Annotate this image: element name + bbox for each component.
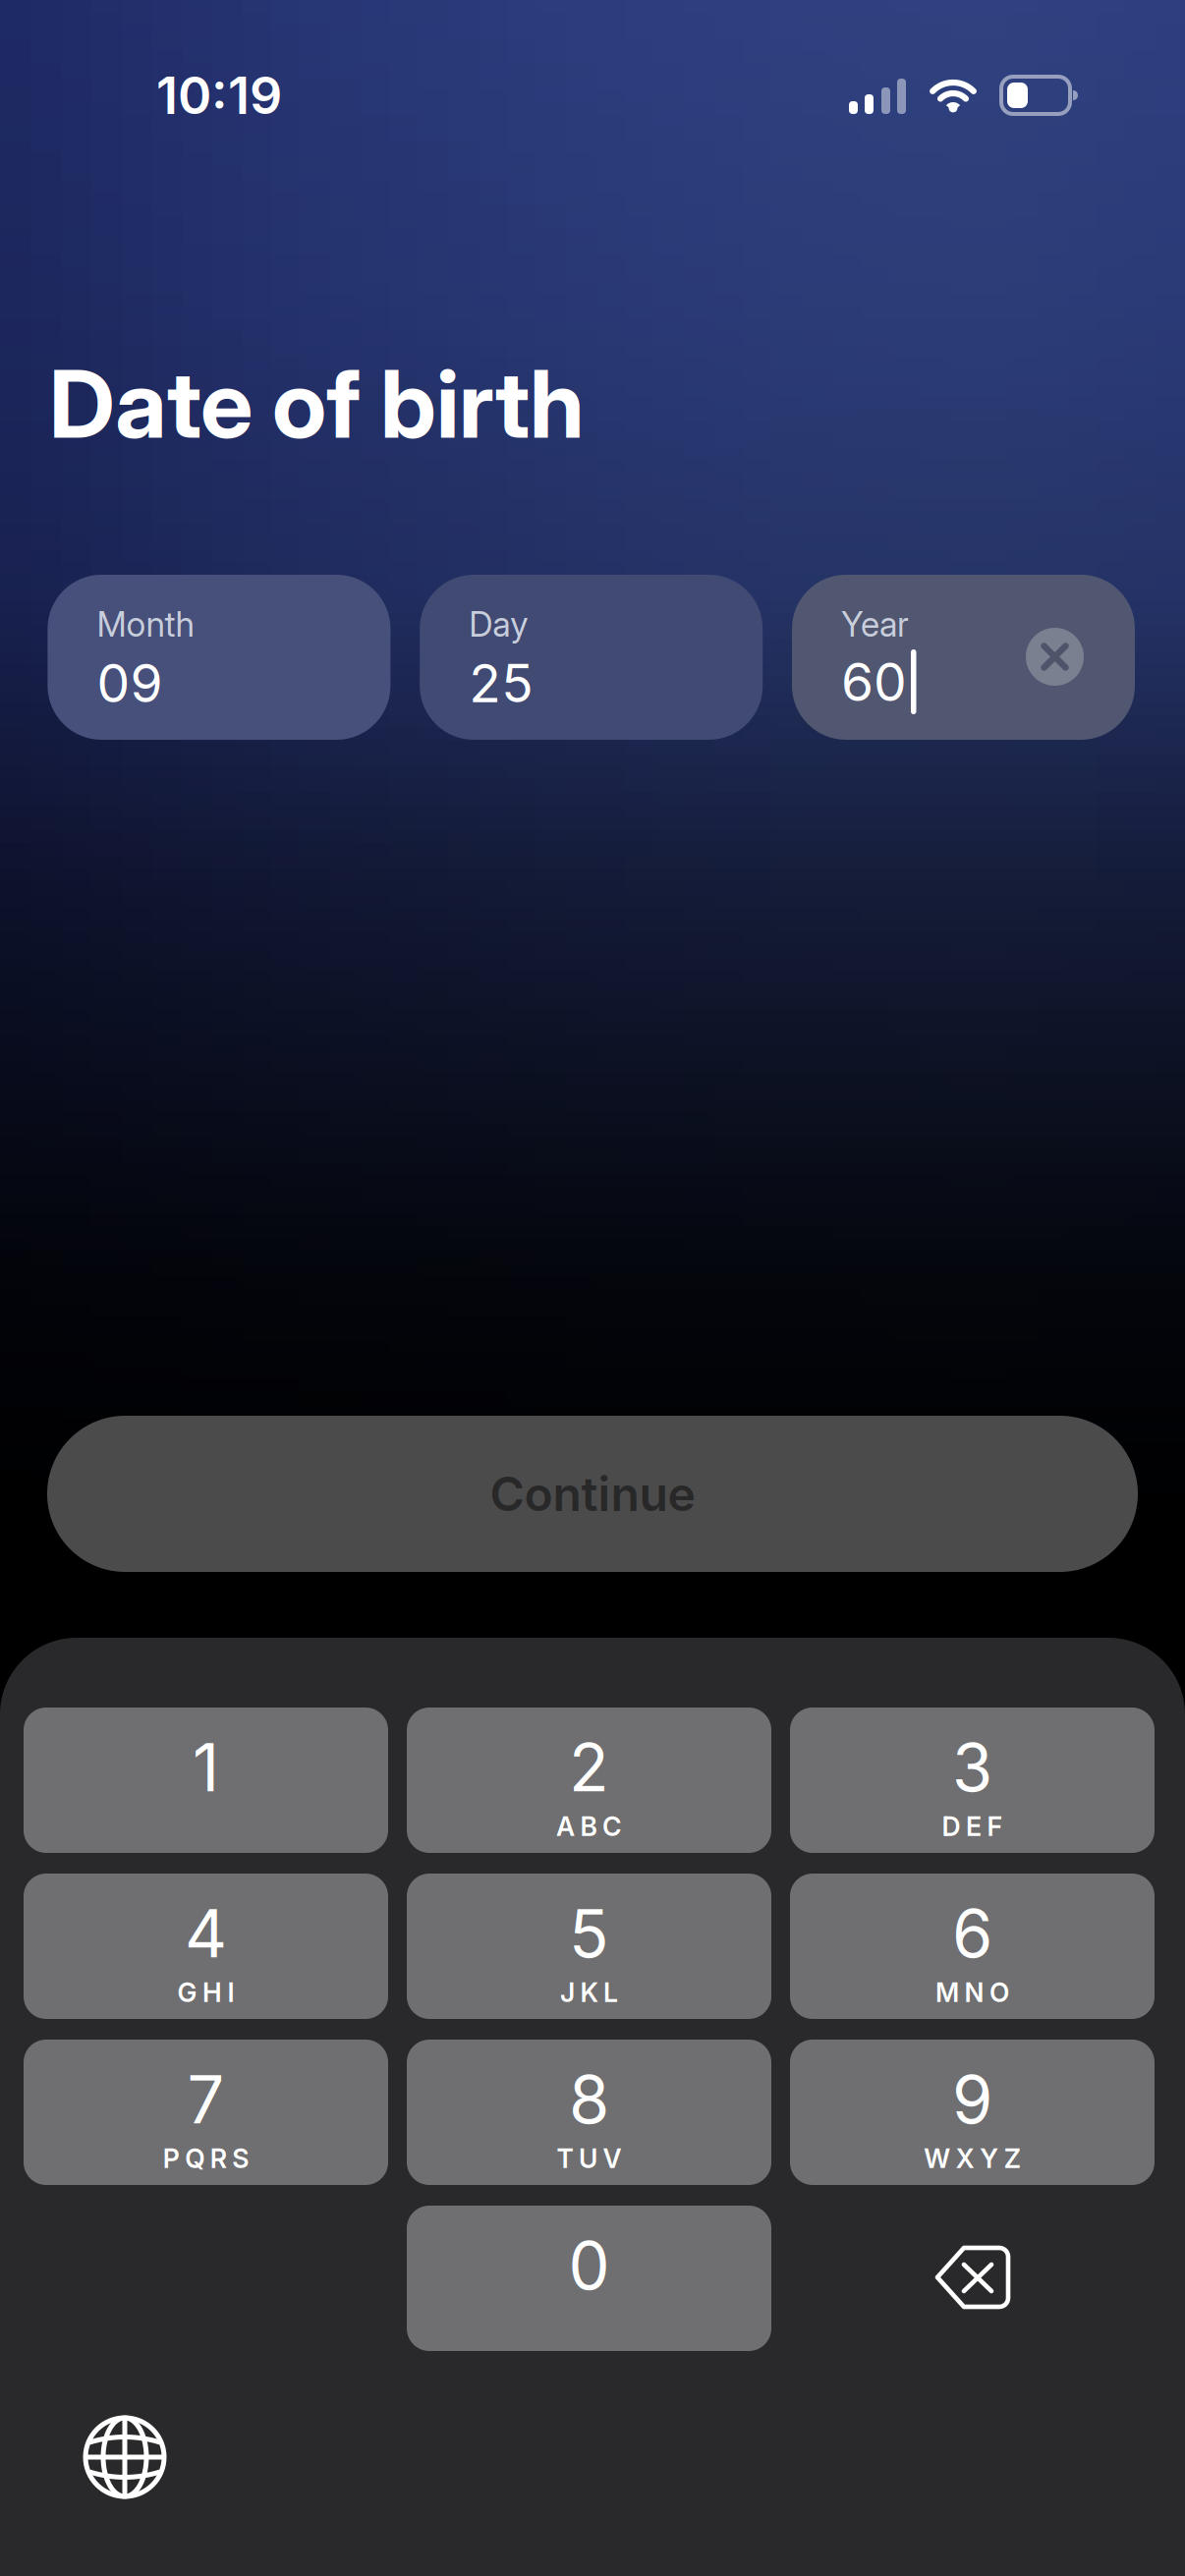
button[interactable]: 0 xyxy=(407,2206,771,2351)
staticText: GHI xyxy=(177,1977,234,2008)
button[interactable]: Year xyxy=(792,575,1135,740)
button[interactable]: 9 xyxy=(790,2040,1155,2185)
button[interactable]: 7 xyxy=(24,2040,388,2185)
staticText: TUV xyxy=(557,2143,621,2174)
staticText: 2 xyxy=(569,1729,609,1806)
button[interactable]: Day xyxy=(420,575,763,740)
button[interactable]: Month xyxy=(48,575,390,740)
staticText: MNO xyxy=(935,1977,1009,2008)
staticText: Continue xyxy=(490,1466,695,1522)
button[interactable]: Next keyboard xyxy=(80,2412,170,2502)
staticText: 0 xyxy=(568,2227,610,2304)
button[interactable]: 2 xyxy=(407,1708,771,1853)
staticText: 4 xyxy=(185,1895,227,1972)
staticText: Date of birth xyxy=(49,347,585,460)
staticText: ABC xyxy=(556,1811,622,1842)
staticText: 1 xyxy=(193,1729,219,1806)
button[interactable]: 8 xyxy=(407,2040,771,2185)
button[interactable]: 4 xyxy=(24,1874,388,2019)
staticText: Year xyxy=(841,604,909,644)
button[interactable]: Continue xyxy=(47,1416,1138,1572)
staticText: Day xyxy=(469,604,528,644)
staticText: DEF xyxy=(942,1811,1003,1842)
staticText: 5 xyxy=(569,1895,609,1972)
staticText: 10:19 xyxy=(156,65,282,125)
staticText: 6 xyxy=(952,1895,992,1972)
staticText: 7 xyxy=(187,2061,225,2138)
button[interactable]: Clear xyxy=(1026,628,1084,686)
staticText: 09 xyxy=(97,652,163,714)
staticText: 60 xyxy=(841,651,907,713)
button[interactable]: 3 xyxy=(790,1708,1155,1853)
button[interactable]: 1 xyxy=(24,1708,388,1853)
staticText: WXYZ xyxy=(924,2143,1021,2174)
staticText: 25 xyxy=(469,652,533,714)
staticText: JKL xyxy=(560,1977,618,2008)
staticText: 8 xyxy=(569,2061,609,2138)
button[interactable]: Delete xyxy=(935,2246,1010,2309)
staticText: 3 xyxy=(952,1729,992,1806)
staticText: Month xyxy=(97,604,194,644)
staticText: PQRS xyxy=(163,2143,249,2174)
button[interactable]: 5 xyxy=(407,1874,771,2019)
button[interactable]: 6 xyxy=(790,1874,1155,2019)
staticText: 9 xyxy=(952,2061,992,2138)
